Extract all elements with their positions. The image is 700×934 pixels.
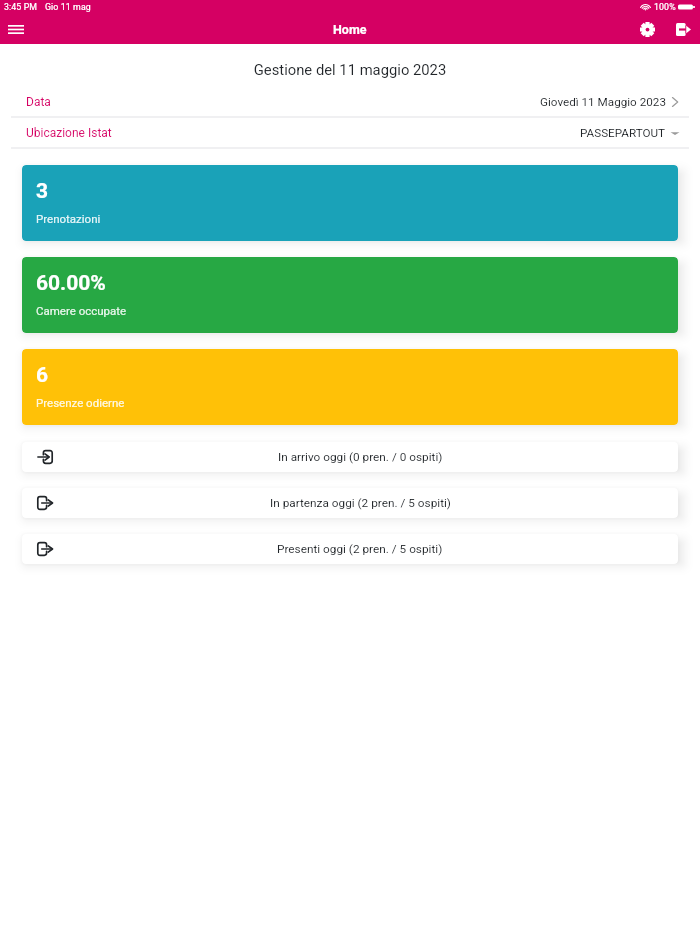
button[interactable]: Presenti oggi (2 pren. / 5 ospiti) bbox=[22, 534, 678, 564]
staticText: 60.00% bbox=[36, 271, 106, 296]
staticText: 3 bbox=[36, 179, 49, 204]
staticText: Camere occupate bbox=[36, 304, 127, 317]
button[interactable]: 3 bbox=[22, 165, 678, 241]
staticText: Data bbox=[26, 95, 51, 109]
staticText: PASSEPARTOUT bbox=[580, 126, 666, 140]
button[interactable]: 60.00% bbox=[22, 257, 678, 333]
staticText: Presenti oggi (2 pren. / 5 ospiti) bbox=[277, 542, 443, 556]
button[interactable]: Settings bbox=[632, 15, 662, 44]
staticText: 6 bbox=[36, 363, 49, 388]
staticText: Giovedì 11 Maggio 2023 bbox=[540, 95, 666, 109]
staticText: Prenotazioni bbox=[36, 212, 101, 225]
staticText: Gestione del 11 maggio 2023 bbox=[0, 61, 700, 78]
staticText: 100% bbox=[654, 2, 676, 12]
staticText: Home bbox=[333, 22, 367, 37]
staticText: 3:45 PM bbox=[4, 2, 38, 12]
button[interactable]: Data bbox=[0, 87, 700, 118]
staticText: In partenza oggi (2 pren. / 5 ospiti) bbox=[270, 496, 451, 510]
button[interactable]: Open navigation menu bbox=[1, 15, 31, 44]
button[interactable]: 6 bbox=[22, 349, 678, 425]
button[interactable]: In partenza oggi (2 pren. / 5 ospiti) bbox=[22, 488, 678, 518]
button[interactable]: In arrivo oggi (0 pren. / 0 ospiti) bbox=[22, 442, 678, 472]
button[interactable]: Ubicazione Istat bbox=[0, 118, 700, 149]
staticText: In arrivo oggi (0 pren. / 0 ospiti) bbox=[278, 450, 443, 464]
button[interactable]: Logout bbox=[668, 15, 698, 44]
staticText: Presenze odierne bbox=[36, 396, 125, 409]
staticText: Ubicazione Istat bbox=[26, 126, 112, 140]
staticText: Gio 11 mag bbox=[45, 2, 91, 12]
